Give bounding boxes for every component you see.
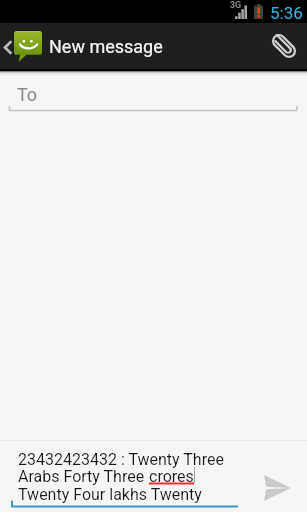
staticText: 5:36 — [270, 3, 303, 23]
button[interactable]: 23432423432 : Twenty Three — [0, 441, 238, 512]
staticText: Twenty Four lakhs Twenty — [18, 485, 202, 504]
staticText: Arabs Forty Three — [18, 467, 149, 486]
staticText: 3G — [230, 0, 242, 11]
staticText: To — [17, 84, 38, 105]
staticText: New message — [49, 36, 163, 57]
staticText: 23432423432 : Twenty Three — [18, 450, 224, 469]
button[interactable]: Send — [238, 441, 307, 512]
staticText: crores — [149, 467, 194, 486]
button[interactable]: Attach — [261, 23, 307, 69]
button[interactable]: Navigate up — [0, 23, 42, 69]
